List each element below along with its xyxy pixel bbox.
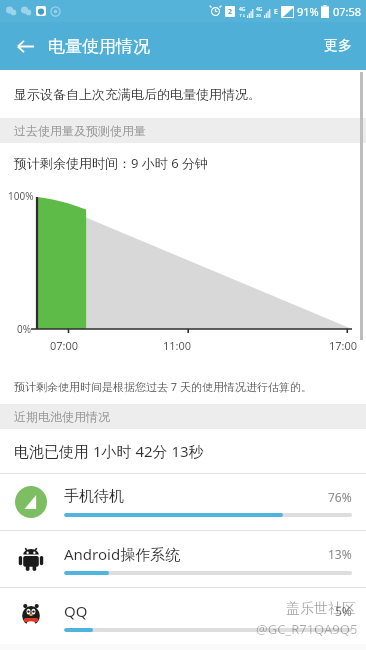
staticText: @GC_R71QA9Q5 [256,620,358,638]
staticText: 更多 [324,37,352,55]
button[interactable]: Android操作系统 [0,531,366,587]
staticText: ↑↓ [239,13,246,18]
staticText: 07:00 [50,338,79,353]
staticText: 显示设备自上次充满电后的电量使用情况。 [14,86,261,102]
staticText: 盖乐世社区 [286,600,356,618]
staticText: 电池已使用 1小时 42分 13秒 [14,441,204,461]
staticText: 电量使用情况 [48,36,150,57]
button[interactable]: QQ [0,588,366,644]
staticText: 过去使用量及预测使用量 [14,123,146,138]
button[interactable]: Back [8,29,42,63]
staticText: 2 [228,7,233,17]
staticText: 91% [297,4,319,19]
button[interactable]: 更多 [320,33,356,59]
staticText: 100% [8,189,34,203]
staticText: E [274,7,278,17]
staticText: QQ [64,601,335,621]
staticText: 76% [328,489,352,505]
staticText: 17:00 [329,338,358,353]
staticText: 4G [256,6,263,13]
button[interactable]: 手机待机 [0,474,366,530]
staticText: 4G [239,6,246,13]
staticText: 预计剩余使用时间：9 小时 6 分钟 [14,154,209,172]
staticText: 预计剩余使用时间是根据您过去 7 天的使用情况进行估算的。 [14,379,313,394]
staticText: 5% [335,603,352,619]
staticText: 07:58 [333,4,362,19]
staticText: 近期电池使用情况 [14,409,110,424]
staticText: 手机待机 [64,487,328,506]
staticText: Android操作系统 [64,544,328,564]
staticText: 2G [256,13,262,18]
staticText: 13% [328,546,352,562]
staticText: 11:00 [163,338,192,353]
staticText: 0% [17,322,32,336]
